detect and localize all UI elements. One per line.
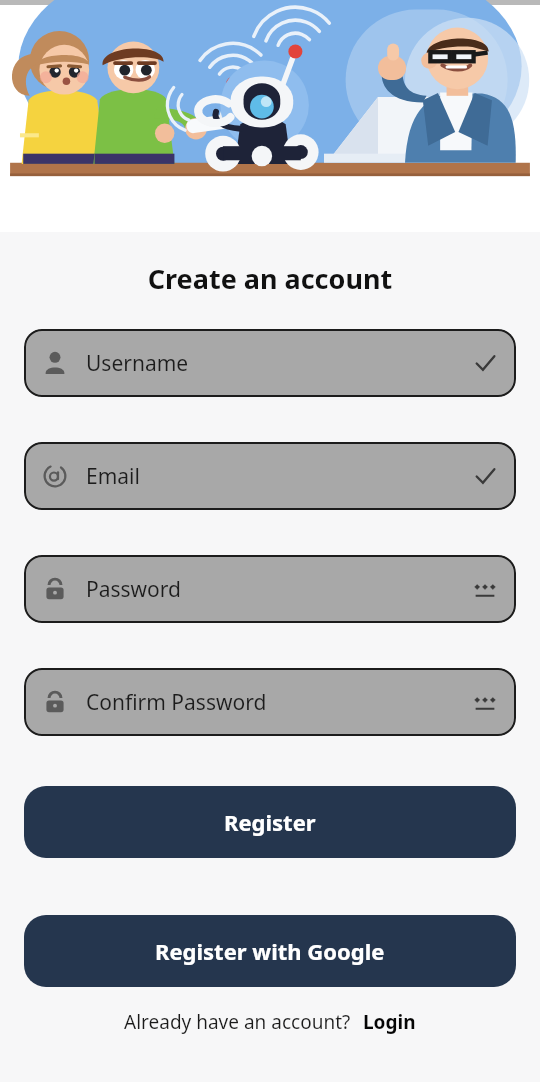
staticText: Username bbox=[86, 349, 472, 378]
staticText: Create an account bbox=[0, 260, 540, 297]
button[interactable]: Confirm Password bbox=[24, 668, 516, 736]
staticText: Email bbox=[86, 462, 472, 491]
button[interactable]: Email bbox=[24, 442, 516, 510]
button[interactable]: Register bbox=[24, 786, 516, 858]
button[interactable]: Login bbox=[363, 1009, 416, 1035]
staticText: Already have an account? bbox=[124, 1009, 351, 1035]
staticText: Register bbox=[224, 807, 316, 837]
staticText: Login bbox=[363, 1009, 416, 1035]
staticText: Register with Google bbox=[155, 936, 385, 966]
button[interactable]: Password bbox=[24, 555, 516, 623]
staticText: Confirm Password bbox=[86, 688, 472, 717]
button[interactable]: Register with Google bbox=[24, 915, 516, 987]
button[interactable]: Username bbox=[24, 329, 516, 397]
staticText: Password bbox=[86, 575, 472, 604]
